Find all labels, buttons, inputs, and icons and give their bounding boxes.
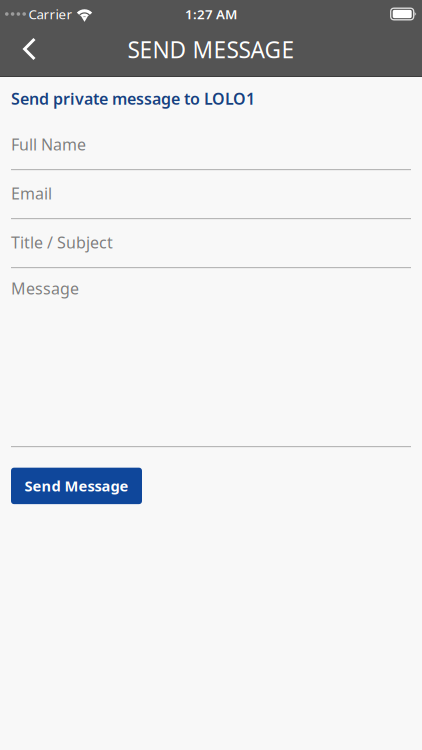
button[interactable]: Send Message xyxy=(11,468,142,504)
staticText: Title / Subject xyxy=(11,232,113,253)
staticText: Send private message to LOLO1 xyxy=(11,88,255,109)
button[interactable]: Email xyxy=(11,170,411,219)
button[interactable]: Full Name xyxy=(11,121,411,170)
staticText: Full Name xyxy=(11,134,86,155)
button[interactable]: Back xyxy=(0,27,53,77)
staticText: Email xyxy=(11,183,52,204)
button[interactable]: Message xyxy=(11,268,411,447)
staticText: Message xyxy=(11,277,79,299)
staticText: 1:27 AM xyxy=(185,5,237,23)
staticText: Carrier xyxy=(28,5,72,23)
staticText: Send Message xyxy=(24,476,128,496)
button[interactable]: Title / Subject xyxy=(11,219,411,268)
staticText: SEND MESSAGE xyxy=(127,34,294,64)
